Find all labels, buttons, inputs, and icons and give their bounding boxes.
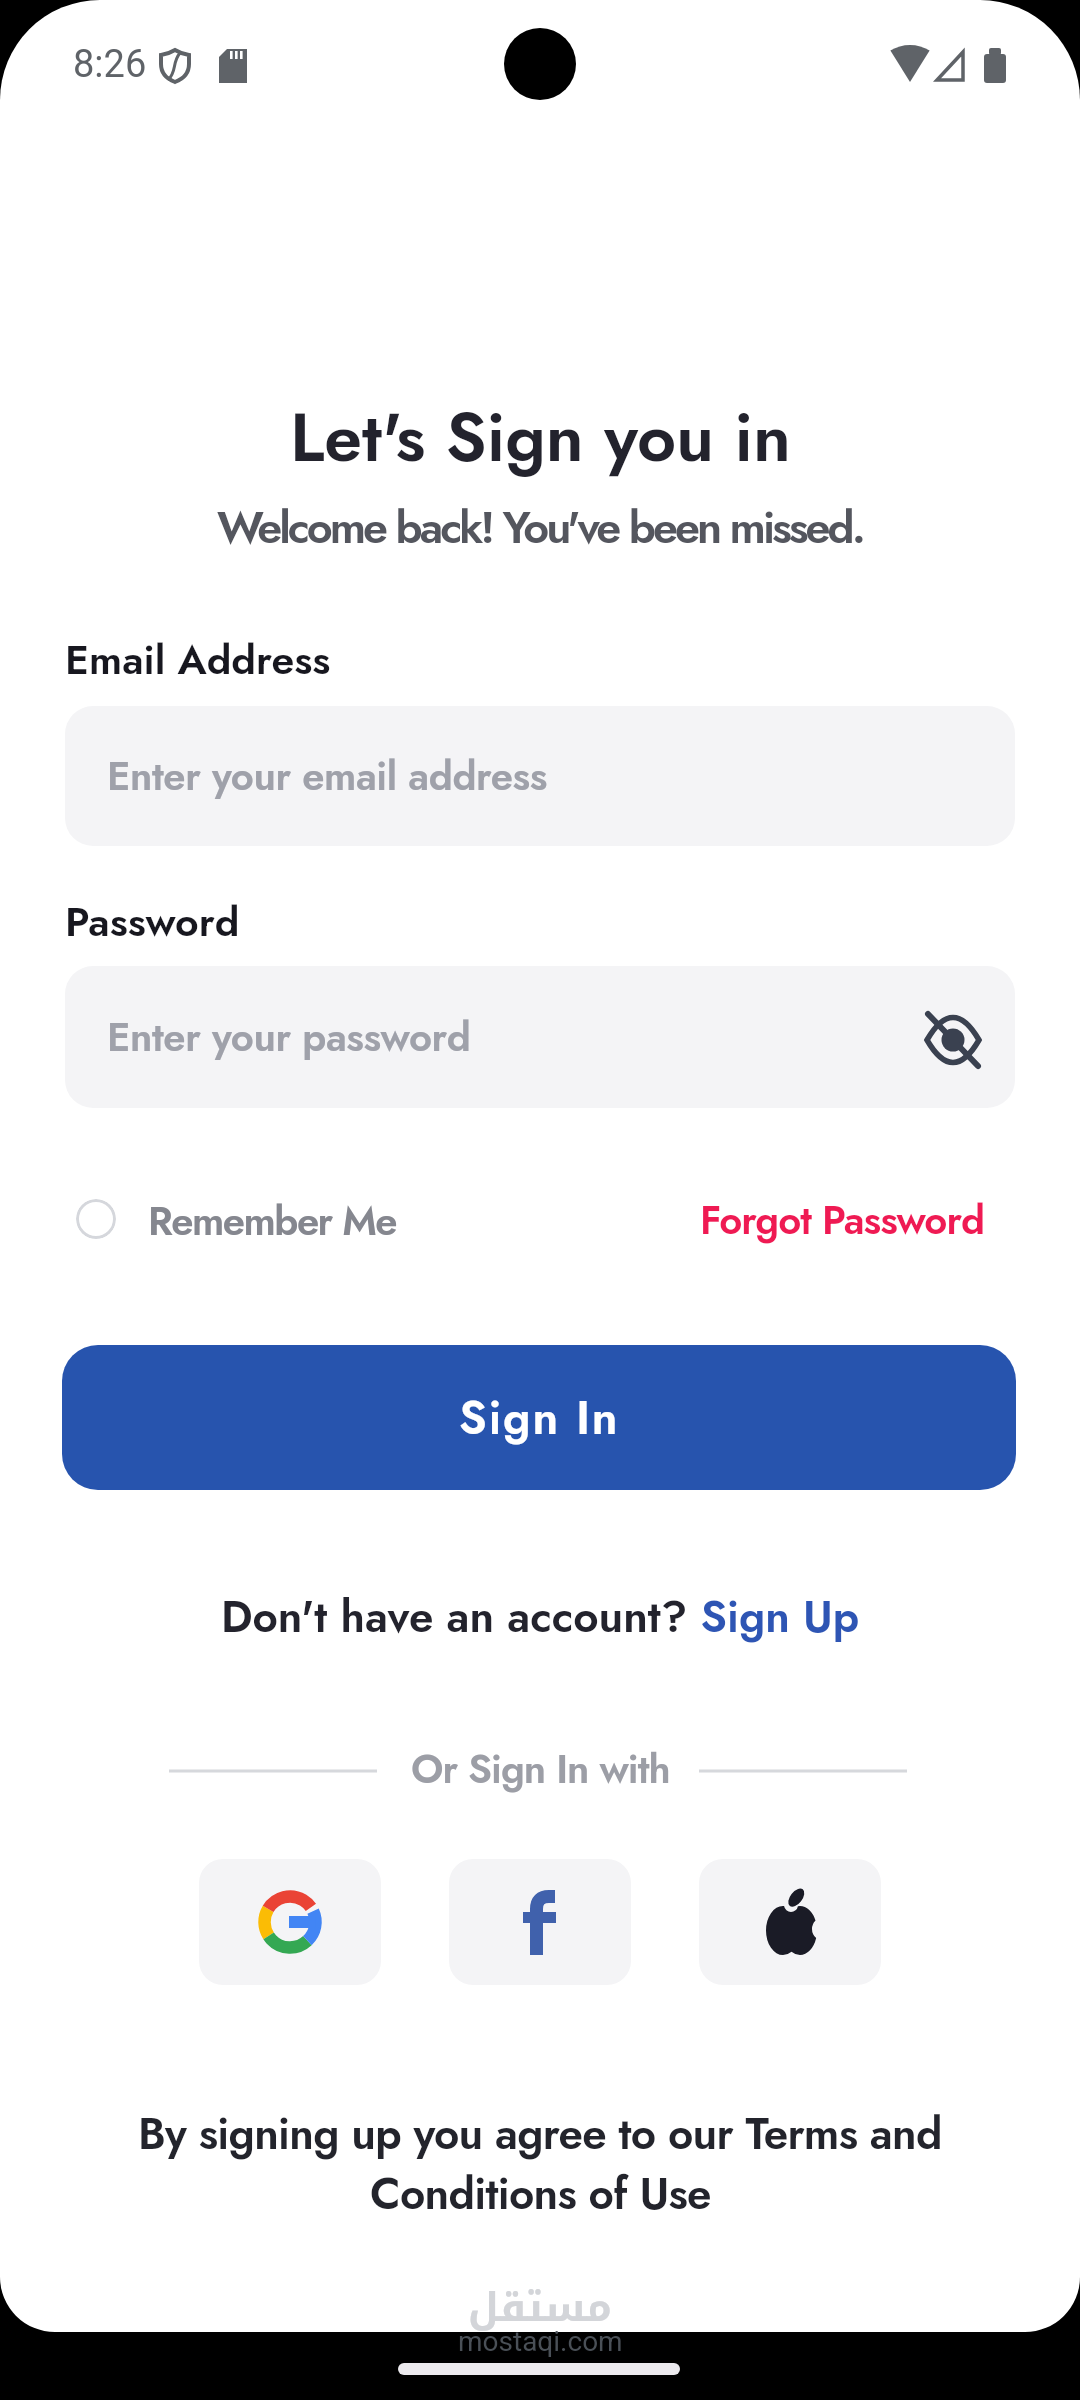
staticText: Sign In bbox=[459, 1385, 620, 1451]
staticText: Let's Sign you in bbox=[290, 388, 791, 486]
staticText: Password bbox=[65, 892, 240, 951]
staticText: Don't have an account? Sign Up bbox=[221, 1585, 860, 1649]
staticText: Email Address bbox=[65, 630, 331, 689]
staticText: Conditions of Use bbox=[370, 2162, 711, 2226]
staticText: Forgot Password bbox=[700, 1191, 985, 1249]
staticText: Enter your email address bbox=[107, 747, 547, 805]
button[interactable] bbox=[76, 1199, 116, 1239]
button[interactable]: Sign In bbox=[62, 1345, 1016, 1490]
staticText: Enter your password bbox=[107, 1008, 471, 1066]
button[interactable] bbox=[199, 1859, 381, 1985]
staticText: Remember Me bbox=[148, 1192, 397, 1250]
button[interactable] bbox=[916, 1003, 990, 1077]
staticText: 8:26 bbox=[73, 42, 147, 87]
button[interactable]: Enter your email address bbox=[65, 706, 1015, 846]
staticText: مستقل bbox=[468, 2270, 612, 2346]
button[interactable]: Don't have an account? Sign Up bbox=[0, 1585, 1080, 1649]
button[interactable]: Enter your password bbox=[65, 966, 1015, 1108]
staticText: Welcome back! You've been missed. bbox=[217, 495, 863, 560]
staticText: By signing up you agree to our Terms and bbox=[138, 2102, 942, 2166]
button[interactable]: Forgot Password bbox=[700, 1191, 985, 1249]
staticText: Or Sign In with bbox=[411, 1740, 670, 1798]
staticText: mostaqi.com bbox=[458, 2325, 623, 2358]
button[interactable] bbox=[699, 1859, 881, 1985]
button[interactable] bbox=[449, 1859, 631, 1985]
